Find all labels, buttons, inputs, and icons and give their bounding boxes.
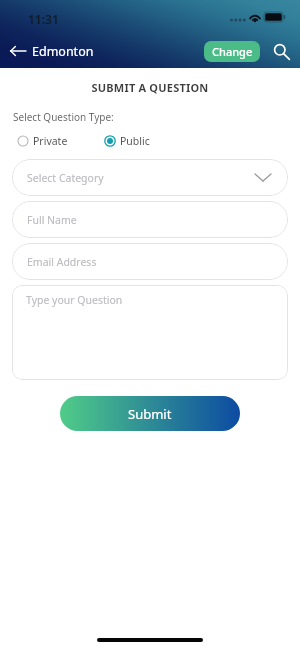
button[interactable]: Change xyxy=(204,41,260,62)
button[interactable]: Type your Question xyxy=(12,285,288,380)
staticText: Type your Question xyxy=(26,293,123,307)
button[interactable]: Full Name xyxy=(12,201,288,238)
staticText: SUBMIT A QUESTION xyxy=(0,80,300,95)
button[interactable]: Submit xyxy=(60,396,240,431)
staticText: 11:31 xyxy=(28,11,59,27)
staticText: Select Category xyxy=(27,171,104,185)
staticText: Public xyxy=(120,134,150,148)
staticText: Email Address xyxy=(27,255,97,269)
staticText: Submit xyxy=(128,405,172,423)
button[interactable]: Select Category xyxy=(12,159,288,196)
staticText: Private xyxy=(33,134,68,148)
staticText: Select Question Type: xyxy=(13,110,114,124)
button[interactable]: Back xyxy=(7,40,29,62)
button[interactable]: Search xyxy=(268,38,294,64)
button[interactable]: Private xyxy=(13,131,68,151)
button[interactable]: Email Address xyxy=(12,243,288,280)
button[interactable]: Public xyxy=(100,131,150,151)
staticText: Full Name xyxy=(27,213,77,227)
staticText: Change xyxy=(212,44,253,59)
staticText: Edmonton xyxy=(32,43,94,60)
